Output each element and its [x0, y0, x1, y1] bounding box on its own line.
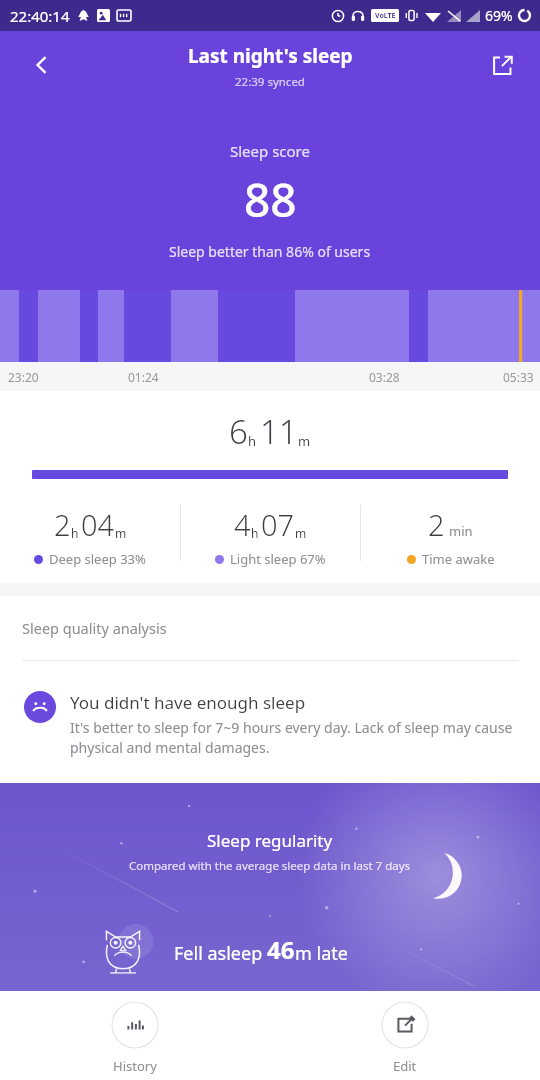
staticText: h: [251, 525, 259, 541]
staticText: You didn't have enough sleep: [70, 691, 306, 714]
staticText: 07: [261, 505, 295, 544]
staticText: Sleep regularity: [207, 829, 333, 852]
staticText: 6: [229, 409, 248, 454]
staticText: It's better to sleep for 7~9 hours every…: [70, 718, 518, 757]
staticText: 11: [260, 409, 298, 454]
staticText: 2: [428, 505, 445, 544]
staticText: m: [295, 525, 307, 541]
staticText: m: [115, 525, 127, 541]
staticText: 2: [54, 505, 71, 544]
staticText: Light sleep 67%: [230, 550, 326, 568]
staticText: Edit: [393, 1057, 417, 1075]
button[interactable]: Back: [20, 43, 64, 87]
staticText: Sleep score: [230, 141, 310, 161]
button[interactable]: You didn't have enough sleep: [24, 691, 518, 757]
staticText: Fell asleep: [174, 941, 267, 966]
staticText: Last night's sleep: [188, 43, 353, 69]
staticText: h: [71, 525, 79, 541]
staticText: History: [113, 1057, 157, 1075]
staticText: m late: [295, 941, 348, 966]
staticText: 05:33: [503, 369, 534, 385]
staticText: 22:40:14: [10, 6, 70, 26]
button[interactable]: History: [0, 1001, 270, 1075]
button[interactable]: Sleep regularity: [0, 783, 540, 991]
staticText: 88: [244, 168, 297, 231]
staticText: 46: [267, 933, 295, 966]
button[interactable]: Edit: [270, 1001, 540, 1075]
staticText: VoLTE: [375, 11, 396, 21]
staticText: 23:20: [8, 369, 39, 385]
button[interactable]: 2: [0, 505, 180, 568]
button[interactable]: Share: [480, 43, 524, 87]
staticText: 22:39 synced: [235, 74, 305, 90]
button[interactable]: 4: [181, 505, 360, 568]
staticText: Sleep quality analysis: [22, 618, 167, 638]
staticText: 69%: [485, 6, 513, 25]
staticText: 03:28: [369, 369, 400, 385]
staticText: Deep sleep 33%: [49, 550, 146, 568]
staticText: Time awake: [422, 550, 495, 568]
staticText: 4: [234, 505, 251, 544]
staticText: m: [298, 432, 311, 450]
staticText: 04: [81, 505, 115, 544]
staticText: 01:24: [128, 369, 159, 385]
button[interactable]: 2: [361, 505, 540, 568]
staticText: h: [248, 432, 257, 450]
staticText: Sleep better than 86% of users: [169, 242, 371, 261]
staticText: min: [449, 522, 473, 540]
staticText: Compared with the average sleep data in …: [129, 858, 411, 874]
